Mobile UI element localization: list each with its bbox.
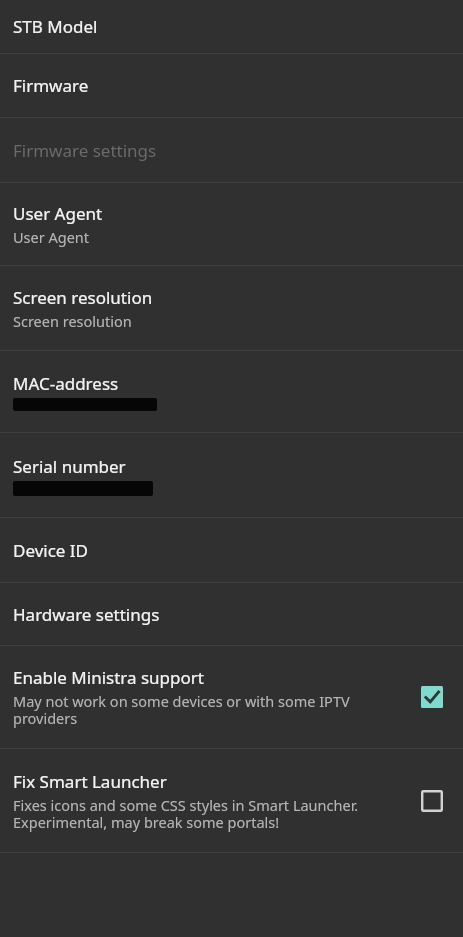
button[interactable]: Firmware settings — [0, 118, 463, 182]
button[interactable]: Screen resolution — [0, 266, 463, 350]
staticText: User Agent — [13, 202, 103, 225]
button[interactable]: User Agent — [0, 183, 463, 265]
button[interactable]: Hardware settings — [0, 583, 463, 645]
staticText: Firmware settings — [13, 139, 157, 162]
button[interactable]: Firmware — [0, 54, 463, 117]
button[interactable]: STB Model — [0, 0, 463, 53]
staticText: Enable Ministra support — [13, 666, 204, 689]
button[interactable]: Fix Smart Launcher — [0, 749, 463, 852]
button[interactable]: Device ID — [0, 518, 463, 582]
staticText: Fixes icons and some CSS styles in Smart… — [13, 795, 405, 832]
other: Unchecked — [415, 784, 449, 818]
staticText: Serial number — [13, 455, 126, 478]
staticText: Screen resolution — [13, 311, 132, 331]
staticText: Firmware — [13, 74, 89, 97]
staticText: User Agent — [13, 227, 90, 247]
staticText: MAC-address — [13, 372, 119, 395]
button[interactable]: MAC-address — [0, 351, 463, 432]
other: Checked — [415, 680, 449, 714]
button[interactable]: Enable Ministra support — [0, 646, 463, 748]
staticText: STB Model — [13, 15, 98, 38]
staticText: Screen resolution — [13, 286, 153, 309]
staticText: May not work on some devices or with som… — [13, 691, 405, 728]
staticText: Device ID — [13, 539, 89, 562]
button[interactable]: Serial number — [0, 433, 463, 517]
staticText: Fix Smart Launcher — [13, 770, 167, 793]
staticText: Hardware settings — [13, 603, 160, 626]
